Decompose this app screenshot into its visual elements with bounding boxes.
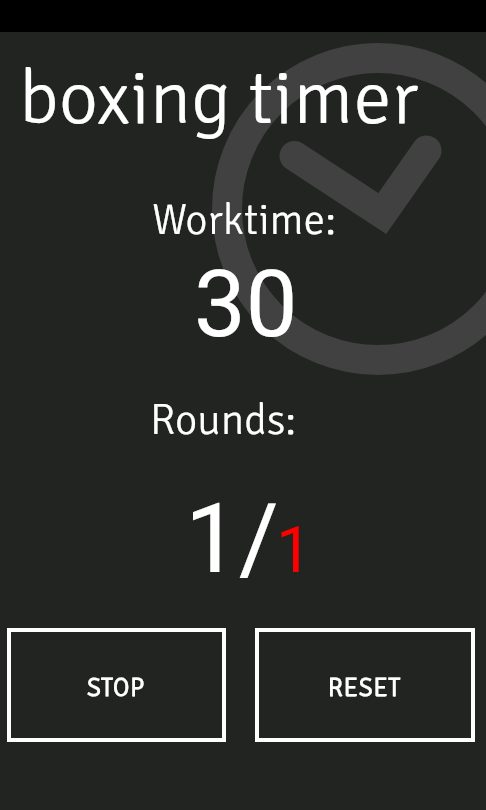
button[interactable]: STOP: [7, 628, 226, 742]
staticText: RESET: [328, 672, 402, 703]
staticText: 1: [276, 505, 312, 599]
staticText: Worktime:: [152, 194, 336, 247]
staticText: boxing timer: [19, 52, 419, 146]
staticText: Rounds:: [150, 394, 297, 447]
staticText: 30: [194, 240, 298, 375]
staticText: 1/: [185, 471, 279, 612]
staticText: STOP: [87, 672, 146, 703]
button[interactable]: RESET: [255, 628, 475, 742]
